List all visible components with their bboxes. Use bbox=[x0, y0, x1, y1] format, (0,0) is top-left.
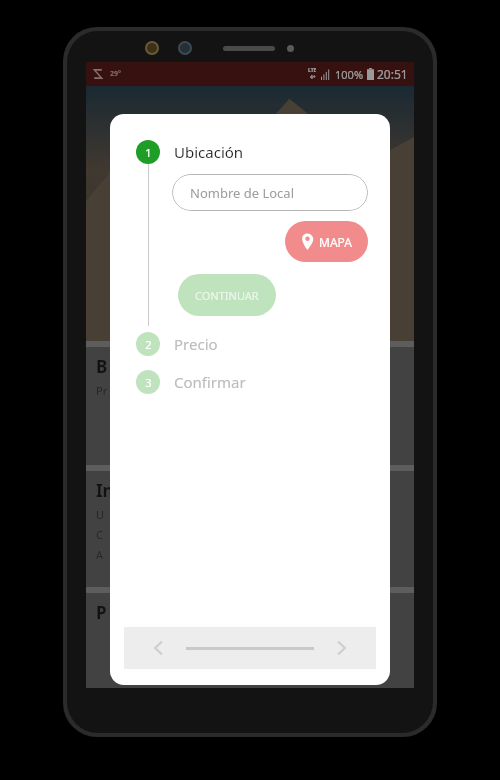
staticText: B bbox=[96, 355, 108, 378]
button[interactable]: 3 bbox=[136, 370, 390, 394]
staticText: 100% bbox=[335, 67, 364, 82]
staticText: 29° bbox=[110, 69, 121, 79]
staticText: C bbox=[96, 527, 103, 542]
button[interactable]: Anterior bbox=[146, 635, 172, 661]
staticText: Nombre de Local bbox=[190, 184, 294, 202]
staticText: 2 bbox=[145, 337, 152, 352]
button[interactable]: 2 bbox=[136, 332, 390, 356]
button[interactable]: Siguiente bbox=[328, 635, 354, 661]
staticText: P bbox=[96, 601, 107, 624]
staticText: 4+ bbox=[310, 74, 316, 81]
button[interactable]: Nombre de Local bbox=[172, 174, 368, 211]
staticText: U bbox=[96, 507, 105, 522]
staticText: 3 bbox=[145, 375, 152, 390]
button[interactable]: CONTINUAR bbox=[178, 274, 276, 316]
staticText: MAPA bbox=[319, 234, 352, 250]
button[interactable]: MAPA bbox=[285, 221, 368, 262]
staticText: Ubicación bbox=[174, 142, 244, 162]
staticText: 1 bbox=[145, 145, 152, 160]
staticText: In bbox=[96, 479, 114, 502]
staticText: Precio bbox=[174, 334, 218, 354]
staticText: CONTINUAR bbox=[195, 288, 259, 303]
staticText: Confirmar bbox=[174, 372, 246, 392]
staticText: Pr bbox=[96, 383, 108, 398]
staticText: 20:51 bbox=[377, 66, 408, 82]
staticText: LTE bbox=[308, 67, 317, 74]
staticText: A bbox=[96, 547, 104, 562]
